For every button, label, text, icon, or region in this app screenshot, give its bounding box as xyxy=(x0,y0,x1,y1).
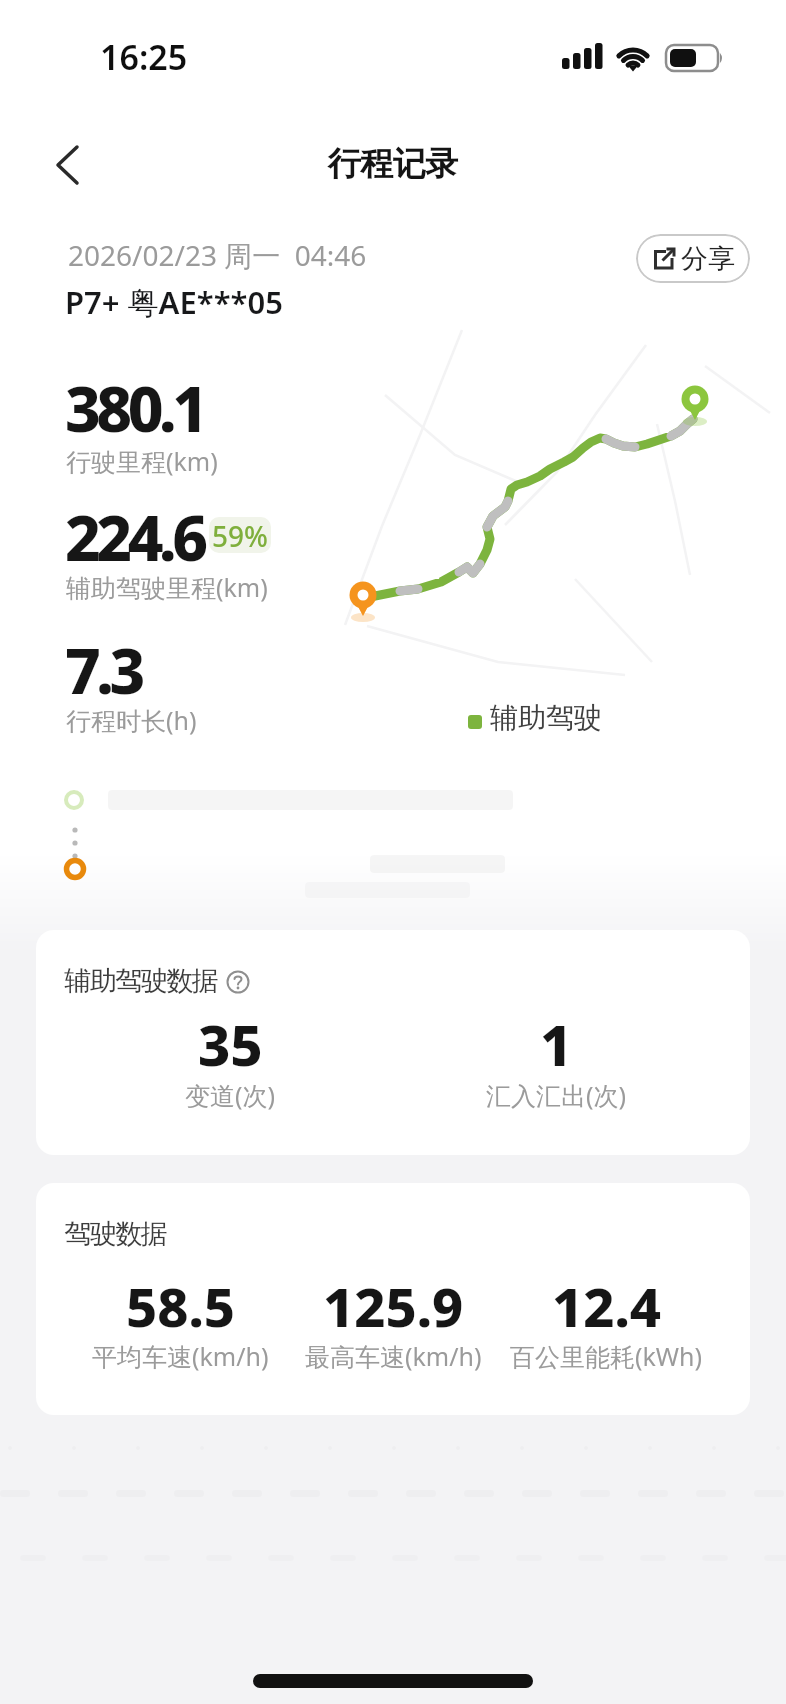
staticText: 16:25 xyxy=(100,34,188,80)
staticText: 辅助驾驶 xyxy=(490,700,602,735)
staticText: 汇入汇出(次) xyxy=(486,1078,627,1112)
staticText: 平均车速(km/h) xyxy=(92,1339,269,1373)
staticText: 380.1 xyxy=(65,366,204,450)
staticText: 125.9 xyxy=(323,1269,464,1343)
staticText: 35 xyxy=(198,1006,263,1082)
button[interactable] xyxy=(226,969,250,993)
staticText: 最高车速(km/h) xyxy=(305,1339,482,1373)
staticText: 变道(次) xyxy=(185,1078,276,1112)
staticText: 行程时长(h) xyxy=(66,703,197,737)
staticText: 12.4 xyxy=(552,1269,662,1343)
staticText: 百公里能耗(kWh) xyxy=(510,1339,703,1373)
staticText: 行驶里程(km) xyxy=(66,444,218,478)
staticText: 分享 xyxy=(681,242,735,276)
staticText: 7.3 xyxy=(65,628,141,712)
staticText: 224.6 xyxy=(65,495,204,579)
staticText: 59% xyxy=(212,517,268,553)
button[interactable] xyxy=(40,135,96,195)
staticText: 行程记录 xyxy=(328,143,458,185)
staticText: 1 xyxy=(540,1006,573,1082)
staticText: 辅助驾驶数据 xyxy=(65,964,218,998)
staticText: 辅助驾驶里程(km) xyxy=(66,570,268,604)
button[interactable]: 分享 xyxy=(636,234,750,283)
staticText: 驾驶数据 xyxy=(65,1217,167,1251)
staticText: 2026/02/23 周一 04:46 xyxy=(68,236,367,274)
staticText: 58.5 xyxy=(126,1269,236,1343)
staticText: P7+ 粤AE***05 xyxy=(65,281,283,323)
